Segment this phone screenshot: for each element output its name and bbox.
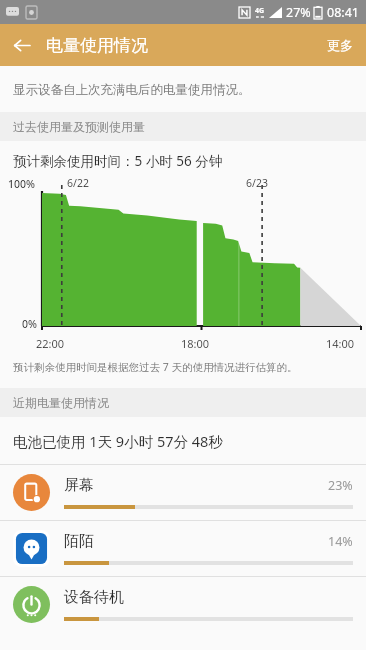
- staticText: 08:41: [327, 4, 359, 21]
- staticText: 屏幕: [64, 476, 94, 495]
- button[interactable]: 更多: [314, 29, 366, 61]
- staticText: 23%: [328, 477, 353, 494]
- staticText: 27%: [286, 4, 311, 21]
- staticText: 陌陌: [64, 532, 94, 551]
- staticText: 显示设备自上次充满电后的电量使用情况。: [13, 82, 251, 98]
- button[interactable]: 设备待机: [0, 577, 366, 632]
- staticText: 电量使用情况: [46, 35, 148, 56]
- button[interactable]: 陌陌: [0, 521, 366, 576]
- staticText: 更多: [327, 37, 353, 53]
- staticText: 电池已使用 1天 9小时 57分 48秒: [13, 431, 223, 451]
- staticText: 0%: [22, 317, 37, 331]
- button[interactable]: 屏幕: [0, 465, 366, 520]
- staticText: 近期电量使用情况: [13, 395, 109, 410]
- staticText: 14:00: [326, 336, 355, 351]
- staticText: 6/22: [67, 176, 89, 190]
- staticText: 100%: [8, 177, 35, 191]
- staticText: 过去使用量及预测使用量: [13, 119, 145, 134]
- staticText: 6/23: [246, 176, 268, 190]
- staticText: 18:00: [181, 336, 210, 351]
- staticText: 22:00: [36, 336, 65, 351]
- staticText: 14%: [328, 533, 353, 550]
- staticText: 预计剩余使用时间：5 小时 56 分钟: [13, 152, 223, 170]
- staticText: 设备待机: [64, 588, 124, 607]
- staticText: 4G: [255, 6, 265, 16]
- staticText: 预计剩余使用时间是根据您过去 7 天的使用情况进行估算的。: [13, 360, 298, 374]
- button[interactable]: Back: [0, 24, 42, 66]
